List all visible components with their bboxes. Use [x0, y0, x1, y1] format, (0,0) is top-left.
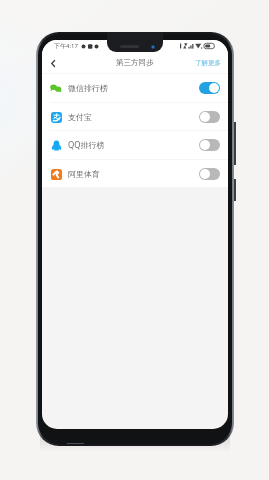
- staticText: 第三方同步: [116, 58, 154, 67]
- button[interactable]: 微信排行榜: [42, 73, 228, 102]
- button[interactable]: 了解更多: [188, 53, 228, 73]
- button[interactable]: 支付宝: [42, 102, 228, 131]
- button[interactable]: Switch on: [199, 82, 220, 94]
- staticText: 阿里体育: [68, 169, 100, 179]
- staticText: 下午4:17: [54, 42, 78, 50]
- button[interactable]: Back: [42, 53, 64, 73]
- staticText: 了解更多: [195, 59, 221, 67]
- staticText: 微信排行榜: [68, 83, 108, 93]
- staticText: 支付宝: [68, 112, 92, 122]
- staticText: QQ排行榜: [68, 139, 105, 150]
- button[interactable]: Switch off: [199, 111, 220, 123]
- button[interactable]: 阿里体育: [42, 159, 228, 188]
- button[interactable]: Switch off: [199, 139, 220, 151]
- button[interactable]: QQ排行榜: [42, 130, 228, 159]
- button[interactable]: Switch off: [199, 168, 220, 180]
